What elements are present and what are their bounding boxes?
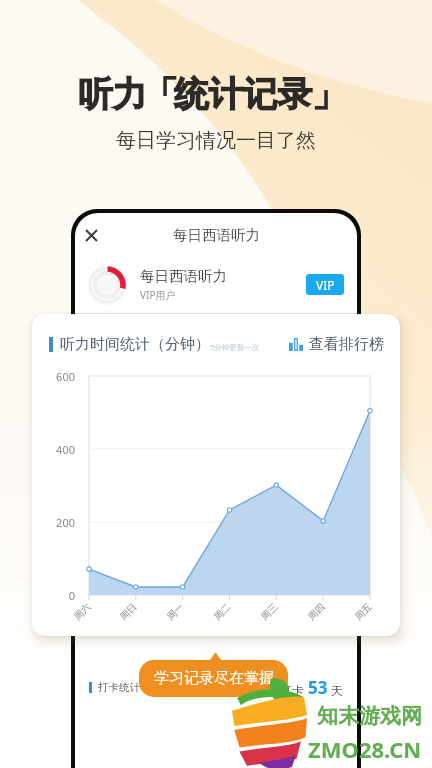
staticText: 查看排行榜 [309,335,384,354]
staticText: 周三 [258,601,280,623]
staticText: 打卡统计 [98,681,140,694]
staticText: 5分钟更新一次 [210,342,260,352]
staticText: 53 [308,676,328,699]
staticText: 周日 [117,601,139,623]
staticText: 听力时间统计（分钟） [60,335,210,354]
staticText: 周四 [305,601,327,623]
button[interactable]: 学习记录尽在掌握 [139,660,288,697]
staticText: 周五 [352,601,374,623]
staticText: 200 [40,515,75,530]
staticText: 统计记录 [174,73,312,116]
staticText: 600 [40,369,75,384]
button[interactable]: 查看排行榜 [289,335,384,354]
staticText: 天 [328,682,344,698]
staticText: 听力 [78,73,147,116]
staticText: VIP [316,277,335,293]
staticText: 400 [40,442,75,457]
staticText: 「 [143,73,178,116]
staticText: 周六 [71,601,93,623]
staticText: 周二 [211,601,233,623]
staticText: 周一 [164,601,186,623]
button[interactable]: Close [78,222,104,248]
staticText: 知末游戏网 [317,703,422,729]
staticText: 每日学习情况一目了然 [0,128,432,153]
staticText: 」 [312,73,347,116]
button[interactable]: 每日西语听力 [75,257,357,312]
staticText: VIP用户 [140,288,176,302]
staticText: 学习记录尽在掌握 [154,669,274,688]
staticText: ZMO28.CN [308,734,422,764]
staticText: 每日西语听力 [173,226,260,244]
staticText: 打卡 [280,682,308,698]
staticText: 每日西语听力 [140,267,227,285]
staticText: 0 [40,588,75,603]
button[interactable]: VIP [306,274,344,295]
